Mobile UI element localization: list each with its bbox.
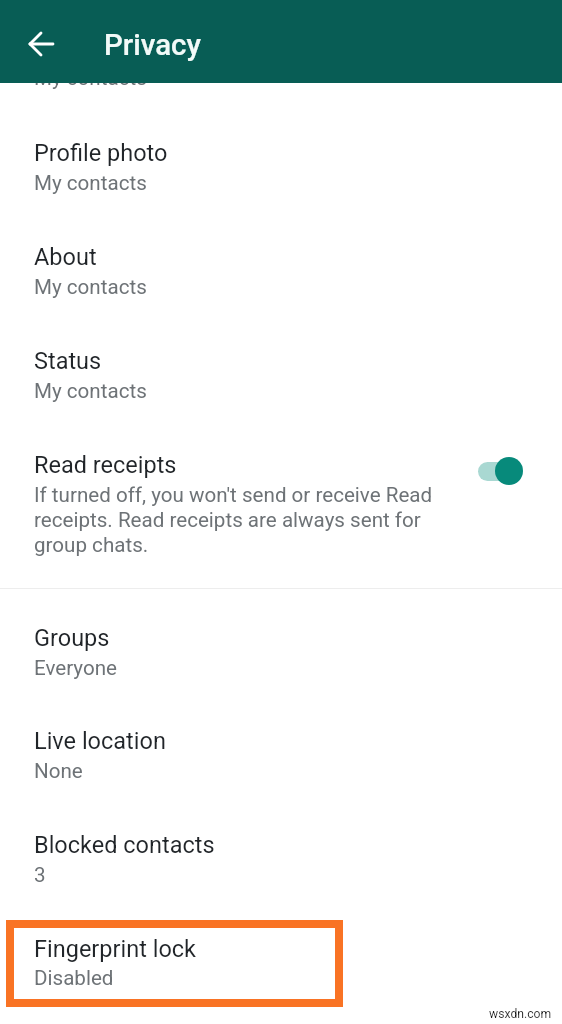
button[interactable]: Groups <box>0 608 562 686</box>
button[interactable]: Live location <box>0 711 562 789</box>
staticText: Profile photo <box>34 139 168 167</box>
button[interactable]: About <box>0 227 562 305</box>
staticText: Fingerprint lock <box>34 935 196 963</box>
staticText: None <box>34 759 83 783</box>
button[interactable]: My contacts <box>0 35 562 91</box>
button[interactable]: Blocked contacts <box>0 815 562 893</box>
staticText: Status <box>34 347 102 375</box>
staticText: Groups <box>34 624 110 652</box>
staticText: Read receipts <box>34 451 177 479</box>
button[interactable]: Back <box>18 21 64 67</box>
staticText: Blocked contacts <box>34 831 215 859</box>
staticText: Everyone <box>34 656 117 680</box>
staticText: Live location <box>34 727 166 755</box>
staticText: Disabled <box>34 966 114 990</box>
button[interactable]: Status <box>0 331 562 409</box>
button[interactable]: Read receipts <box>0 435 562 567</box>
staticText: My contacts <box>34 66 147 90</box>
staticText: 3 <box>34 863 46 887</box>
staticText: My contacts <box>34 379 147 403</box>
staticText: My contacts <box>34 275 147 299</box>
button[interactable]: Profile photo <box>0 123 562 201</box>
staticText: My contacts <box>34 171 147 195</box>
staticText: wsxdn.com <box>489 1007 552 1021</box>
staticText: If turned off, you won't send or receive… <box>34 483 444 557</box>
staticText: Privacy <box>104 28 201 63</box>
button[interactable]: Fingerprint lock <box>6 920 343 1007</box>
button[interactable]: Read receipts toggle <box>470 456 532 496</box>
staticText: About <box>34 243 97 271</box>
